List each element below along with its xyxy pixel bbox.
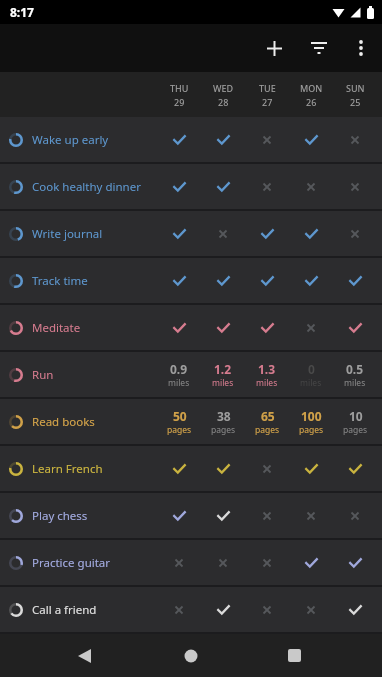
- staticText: 65: [261, 408, 275, 424]
- button[interactable]: [289, 305, 333, 350]
- staticText: 100: [301, 408, 322, 424]
- button[interactable]: [245, 493, 289, 538]
- staticText: pages: [299, 424, 324, 436]
- button[interactable]: [289, 164, 333, 209]
- button[interactable]: 1.2: [201, 352, 245, 397]
- button[interactable]: Learn French: [0, 446, 378, 491]
- button[interactable]: [157, 164, 201, 209]
- button[interactable]: [157, 211, 201, 256]
- button[interactable]: [341, 24, 381, 72]
- staticText: Write journal: [32, 226, 103, 242]
- button[interactable]: [157, 117, 201, 162]
- button[interactable]: [296, 24, 341, 72]
- staticText: miles: [168, 377, 190, 389]
- button[interactable]: [157, 540, 201, 585]
- button[interactable]: [252, 24, 296, 72]
- staticText: Read books: [32, 414, 95, 430]
- button[interactable]: Cook healthy dinner: [0, 164, 378, 209]
- button[interactable]: 0: [289, 352, 333, 397]
- staticText: 1.3: [258, 361, 276, 377]
- staticText: 1.2: [214, 361, 232, 377]
- button[interactable]: Wake up early: [0, 117, 378, 162]
- button[interactable]: [201, 540, 245, 585]
- staticText: miles: [256, 377, 278, 389]
- button[interactable]: 100: [289, 399, 333, 444]
- staticText: Track time: [32, 273, 88, 289]
- button[interactable]: [157, 493, 201, 538]
- button[interactable]: [78, 649, 91, 663]
- button[interactable]: [289, 540, 333, 585]
- button[interactable]: 0.9: [157, 352, 201, 397]
- button[interactable]: Play chess: [0, 493, 378, 538]
- button[interactable]: [245, 258, 289, 303]
- button[interactable]: [245, 211, 289, 256]
- button[interactable]: [333, 305, 377, 350]
- button[interactable]: 0.5: [333, 352, 377, 397]
- button[interactable]: [289, 117, 333, 162]
- button[interactable]: [157, 587, 201, 632]
- button[interactable]: Write journal: [0, 211, 378, 256]
- button[interactable]: [245, 446, 289, 491]
- button[interactable]: [333, 493, 377, 538]
- button[interactable]: [333, 587, 377, 632]
- button[interactable]: [333, 164, 377, 209]
- staticText: Meditate: [32, 320, 81, 336]
- button[interactable]: Call a friend: [0, 587, 378, 632]
- staticText: pages: [167, 424, 192, 436]
- button[interactable]: [245, 540, 289, 585]
- staticText: Run: [32, 367, 54, 383]
- button[interactable]: Track time: [0, 258, 378, 303]
- staticText: miles: [212, 377, 234, 389]
- button[interactable]: Practice guitar: [0, 540, 378, 585]
- staticText: 0.9: [170, 361, 188, 377]
- button[interactable]: 1.3: [245, 352, 289, 397]
- button[interactable]: [245, 117, 289, 162]
- button[interactable]: [184, 649, 198, 663]
- staticText: 25: [350, 96, 361, 108]
- button[interactable]: [289, 587, 333, 632]
- button[interactable]: [333, 446, 377, 491]
- button[interactable]: [157, 305, 201, 350]
- button[interactable]: [289, 258, 333, 303]
- button[interactable]: [333, 117, 377, 162]
- button[interactable]: [201, 446, 245, 491]
- staticText: pages: [255, 424, 280, 436]
- button[interactable]: [201, 211, 245, 256]
- staticText: Practice guitar: [32, 555, 111, 571]
- button[interactable]: [201, 305, 245, 350]
- button[interactable]: [157, 446, 201, 491]
- staticText: miles: [300, 377, 322, 389]
- button[interactable]: 10: [333, 399, 377, 444]
- button[interactable]: [289, 446, 333, 491]
- button[interactable]: [333, 211, 377, 256]
- staticText: 0: [308, 361, 315, 377]
- staticText: Call a friend: [32, 602, 97, 618]
- button[interactable]: Run: [0, 352, 378, 397]
- button[interactable]: [333, 540, 377, 585]
- staticText: 50: [173, 408, 187, 424]
- staticText: 28: [218, 96, 229, 108]
- button[interactable]: [201, 258, 245, 303]
- button[interactable]: [245, 587, 289, 632]
- button[interactable]: [201, 587, 245, 632]
- button[interactable]: [157, 258, 201, 303]
- button[interactable]: [201, 493, 245, 538]
- staticText: Learn French: [32, 461, 103, 477]
- button[interactable]: [201, 164, 245, 209]
- button[interactable]: 38: [201, 399, 245, 444]
- button[interactable]: [333, 258, 377, 303]
- button[interactable]: Meditate: [0, 305, 378, 350]
- button[interactable]: Read books: [0, 399, 378, 444]
- button[interactable]: [245, 305, 289, 350]
- button[interactable]: [289, 211, 333, 256]
- staticText: Play chess: [32, 508, 88, 524]
- staticText: 38: [217, 408, 231, 424]
- button[interactable]: 65: [245, 399, 289, 444]
- button[interactable]: [201, 117, 245, 162]
- button[interactable]: [245, 164, 289, 209]
- staticText: miles: [344, 377, 366, 389]
- button[interactable]: [288, 649, 301, 662]
- button[interactable]: 50: [157, 399, 201, 444]
- button[interactable]: [289, 493, 333, 538]
- staticText: 26: [306, 96, 317, 108]
